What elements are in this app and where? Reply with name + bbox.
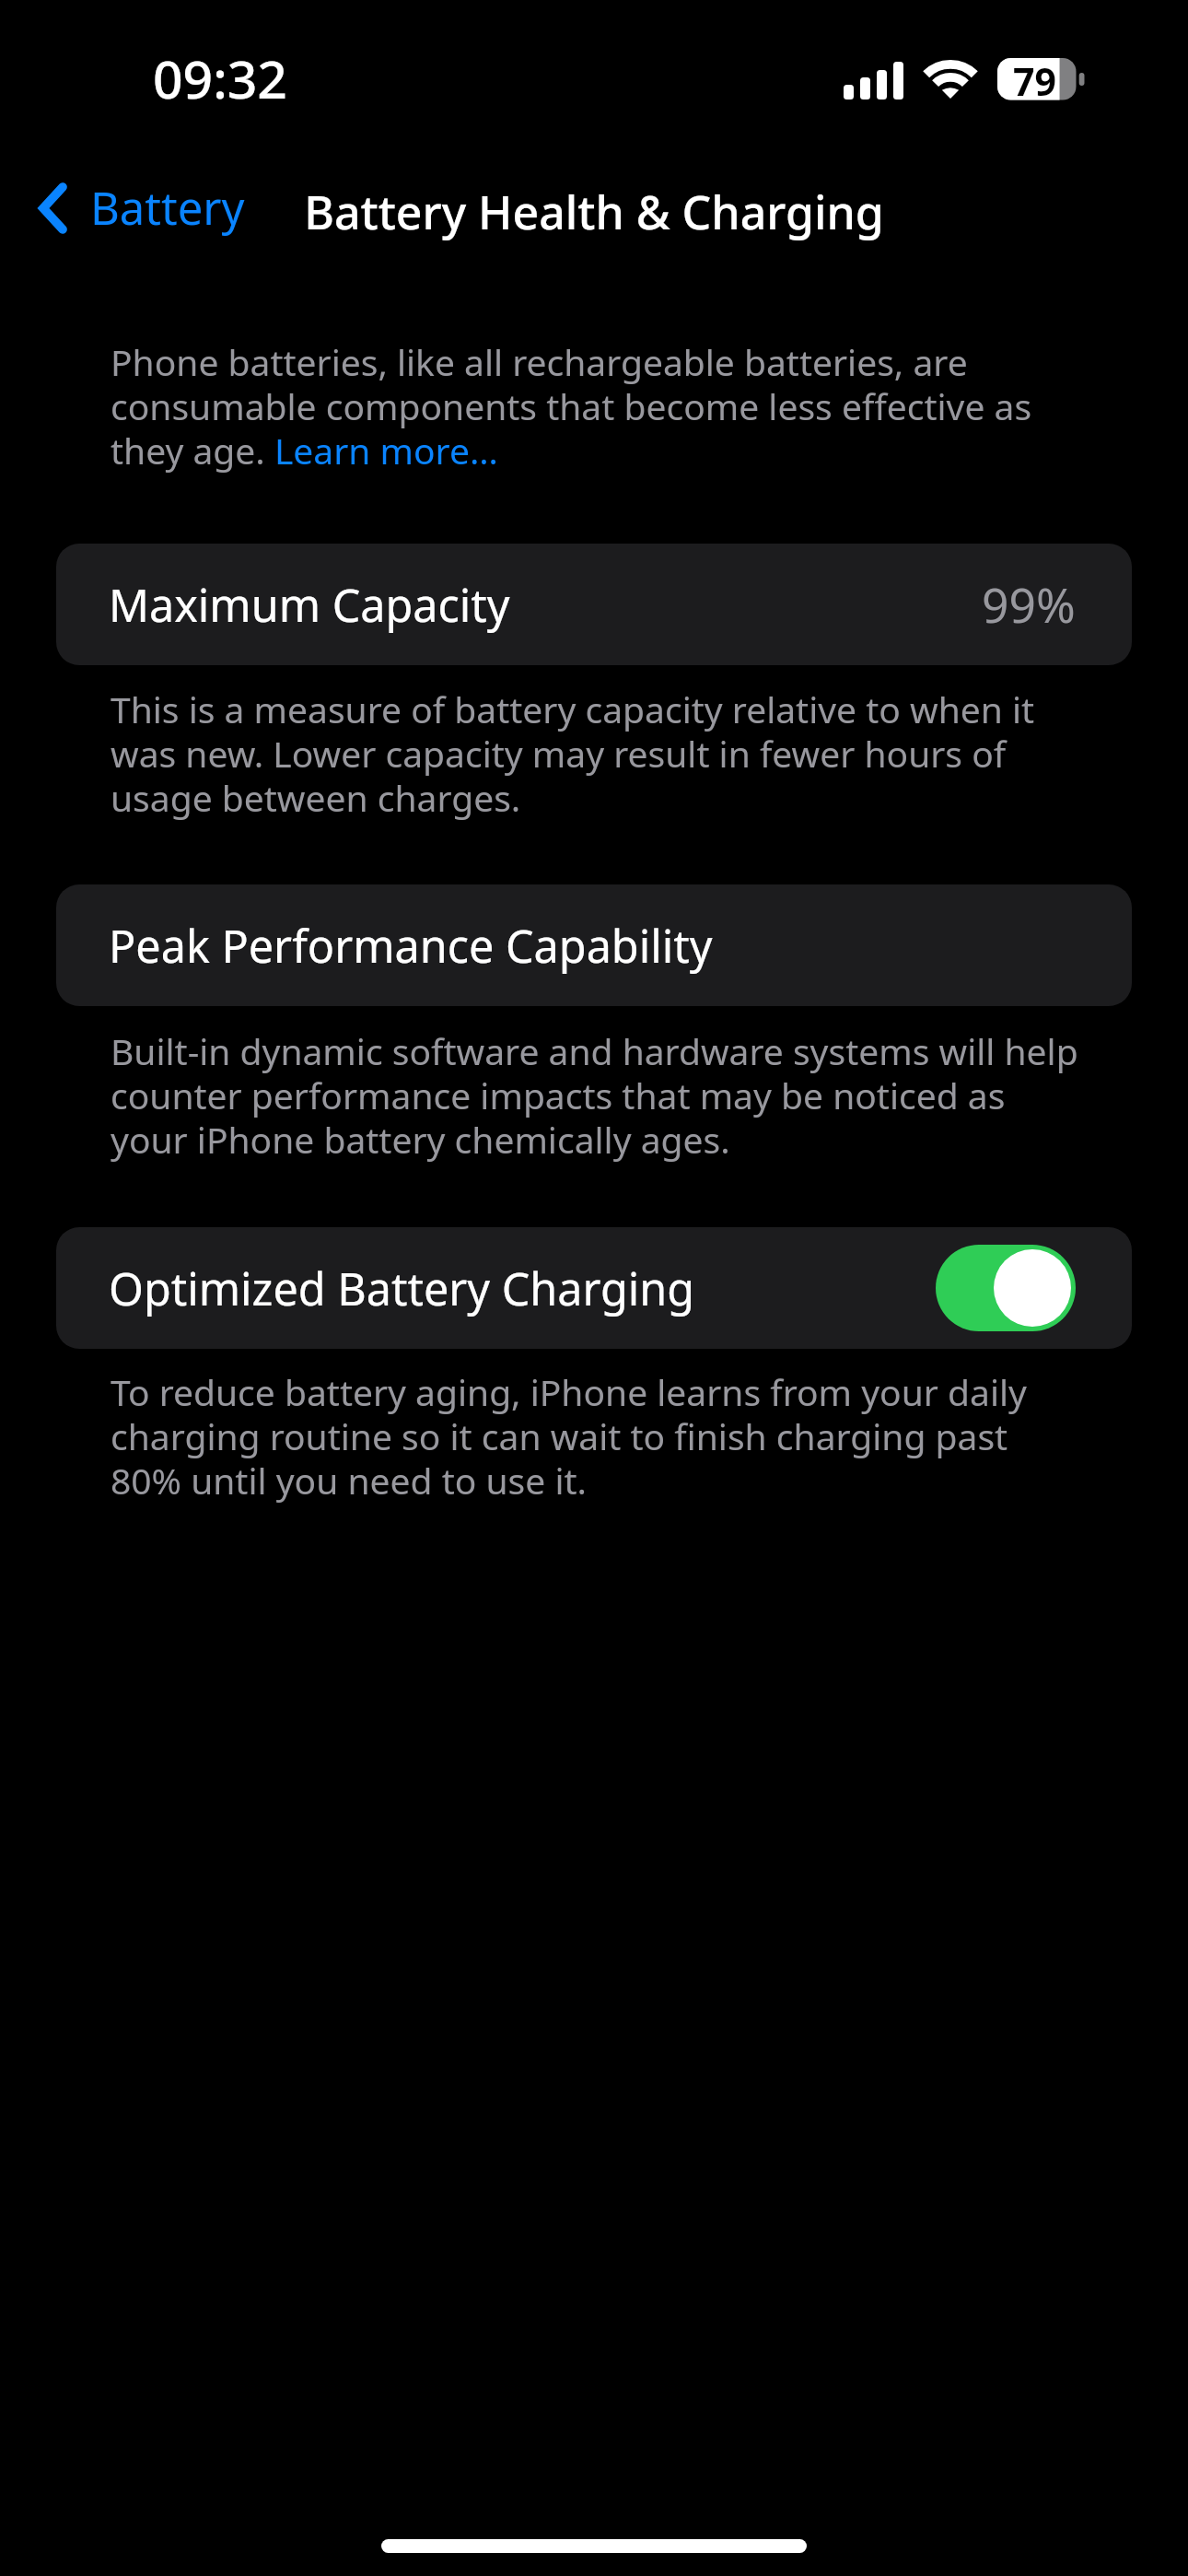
button[interactable]: Back to Battery	[30, 168, 252, 248]
staticText: Optimized Battery Charging	[109, 1258, 695, 1318]
button[interactable]: Peak Performance Capability	[56, 884, 1132, 1006]
button[interactable]: Phone batteries, like all rechargeable b…	[111, 337, 1087, 474]
staticText: 99%	[982, 572, 1076, 637]
staticText: 09:32	[153, 42, 287, 114]
other: Cellular signal, 4 bars	[844, 59, 904, 100]
staticText: Battery	[90, 177, 245, 239]
button[interactable]: Maximum Capacity	[56, 544, 1132, 665]
button[interactable]: Optimized Battery Charging	[56, 1227, 1132, 1349]
staticText: Battery Health & Charging	[0, 181, 1188, 243]
staticText: Peak Performance Capability	[109, 915, 713, 976]
button[interactable]: Optimized Battery Charging, on	[936, 1245, 1076, 1331]
other: Wi-Fi connected	[924, 58, 977, 100]
other: Battery 79 percent	[997, 58, 1085, 100]
staticText: To reduce battery aging, iPhone learns f…	[111, 1367, 1087, 1505]
staticText: Built-in dynamic software and hardware s…	[111, 1026, 1087, 1164]
staticText: 79	[1013, 55, 1056, 98]
staticText: Maximum Capacity	[109, 574, 510, 635]
staticText: This is a measure of battery capacity re…	[111, 685, 1087, 822]
